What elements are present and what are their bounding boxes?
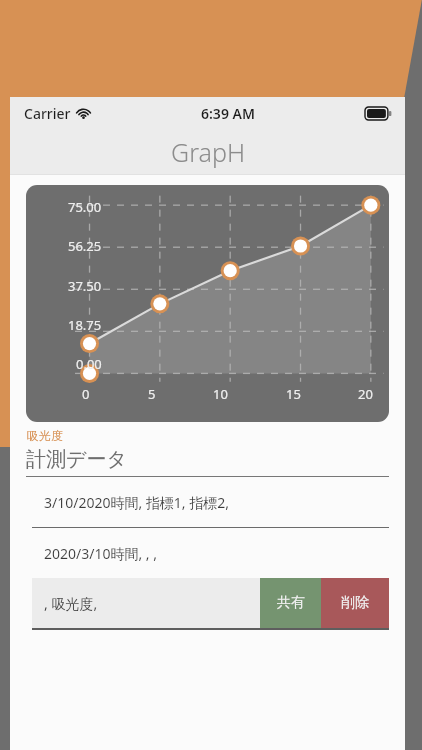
staticText: 共有: [277, 594, 305, 612]
staticText: 削除: [341, 594, 369, 612]
staticText: 15: [286, 385, 301, 403]
button[interactable]: 2020/3/10時間, , ,: [10, 528, 405, 578]
staticText: 10: [213, 385, 228, 403]
staticText: Carrier: [24, 104, 71, 123]
button[interactable]: 共有: [260, 578, 321, 628]
staticText: 37.50: [68, 277, 102, 295]
staticText: 6:39 AM: [201, 104, 255, 123]
staticText: 75.00: [68, 198, 102, 216]
button[interactable]: 3/10/2020時間, 指標1, 指標2,: [10, 477, 405, 527]
staticText: 56.25: [68, 237, 102, 255]
staticText: 20: [358, 385, 373, 403]
staticText: 計測データ: [26, 447, 127, 472]
button[interactable]: , 吸光度,: [32, 578, 260, 628]
staticText: 0: [82, 385, 90, 403]
staticText: 5: [148, 385, 156, 403]
staticText: 18.75: [68, 316, 102, 334]
staticText: 0.00: [76, 355, 102, 373]
button[interactable]: 75.00: [26, 185, 389, 422]
staticText: 3/10/2020時間, 指標1, 指標2,: [44, 493, 230, 512]
staticText: 2020/3/10時間, , ,: [44, 544, 158, 563]
staticText: GrapH: [171, 135, 245, 169]
staticText: 吸光度: [27, 428, 63, 443]
button[interactable]: 削除: [321, 578, 389, 628]
staticText: , 吸光度,: [44, 594, 98, 613]
